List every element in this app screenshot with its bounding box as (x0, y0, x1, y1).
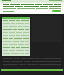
button[interactable]: Primary action (52, 10, 61, 12)
button[interactable] (2, 17, 30, 56)
